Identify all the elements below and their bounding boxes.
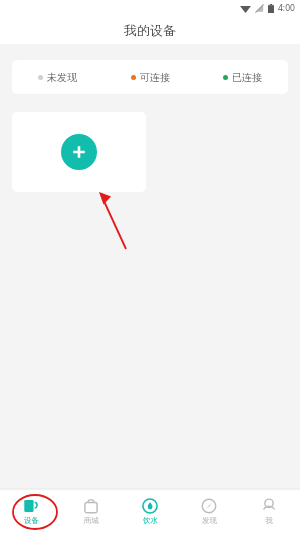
staticText: 设备 [24, 516, 39, 525]
staticText: 已连接 [232, 71, 262, 84]
button[interactable]: 商城 [63, 489, 119, 533]
staticText: 发现 [202, 516, 217, 525]
staticText: 我的设备 [124, 22, 176, 38]
staticText: 可连接 [140, 71, 170, 84]
staticText: 未发现 [47, 71, 77, 84]
button[interactable]: 饮水 [122, 489, 178, 533]
staticText: 饮水 [143, 516, 158, 525]
staticText: 我 [265, 516, 273, 525]
button[interactable]: 发现 [181, 489, 237, 533]
button[interactable]: Add device [12, 112, 146, 192]
button[interactable]: 我 [241, 489, 297, 533]
staticText: 商城 [84, 516, 99, 525]
staticText: 4:00 [278, 2, 295, 14]
button[interactable]: 设备 [3, 489, 59, 533]
button[interactable]: 未发现 [12, 60, 288, 94]
